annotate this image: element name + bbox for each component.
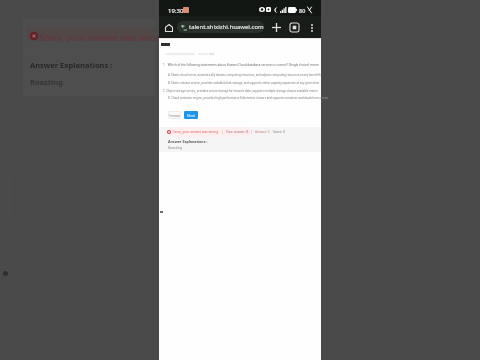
staticText: 80 [299, 7, 306, 14]
staticText: Next [187, 113, 195, 118]
staticText: Your answer: B [226, 130, 249, 134]
staticText: | [251, 130, 253, 134]
staticText: Score: 0 [273, 130, 285, 134]
button[interactable]: Tabs [286, 19, 302, 35]
button[interactable]: Next [184, 111, 198, 119]
staticText: | [222, 130, 224, 134]
button[interactable]: Previous [168, 111, 181, 119]
button[interactable]: Home [161, 20, 176, 35]
button[interactable]: talent.shixizhi.huawei.com/s [177, 21, 264, 33]
staticText: Sorry, your answer was wrong. [173, 130, 220, 134]
staticText: A. Elastic cloud server, automatically o… [168, 73, 321, 77]
staticText: Answer: C [255, 130, 270, 134]
button[interactable]: More options [304, 20, 319, 35]
button[interactable]: New tab [268, 19, 284, 35]
staticText: Answer Explanations : [30, 60, 113, 70]
staticText: 19:30 [168, 7, 184, 15]
staticText: Answer Explanations : [168, 139, 208, 144]
staticText: 1、Which of the following statements abou… [163, 63, 319, 67]
staticText: B. Elastic volume service, provides scal… [168, 81, 320, 85]
staticText: C. Object storage service, provides secu… [163, 89, 318, 93]
staticText: Previous [168, 113, 181, 118]
staticText: Roasting [168, 145, 182, 150]
staticText: Roasting [30, 77, 63, 87]
staticText: D. Cloud container engine, provides high… [168, 96, 329, 100]
staticText: Sorry, your answer was wrong [39, 31, 167, 43]
staticText: talent.shixizhi.huawei.com/s [189, 23, 264, 31]
